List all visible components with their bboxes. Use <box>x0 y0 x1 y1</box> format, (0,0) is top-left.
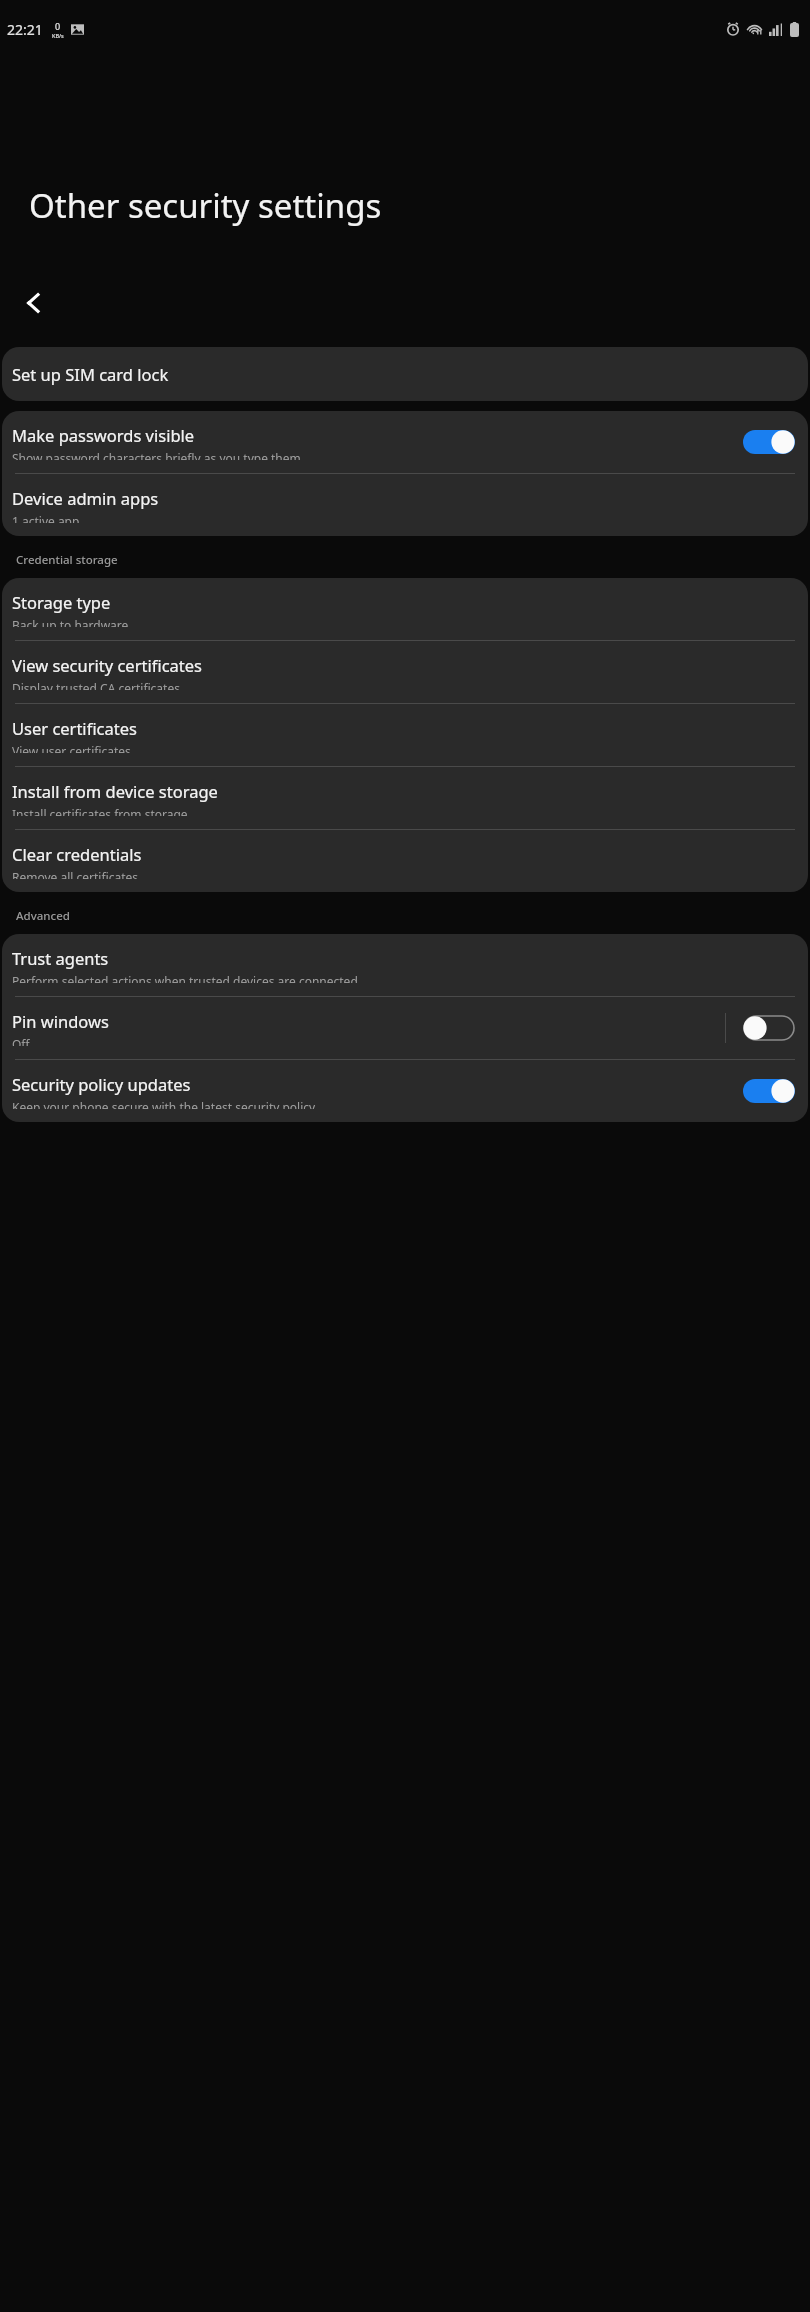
staticText: Advanced <box>16 908 70 924</box>
staticText: View security certificates <box>12 654 202 676</box>
button[interactable]: Pin windows <box>2 997 808 1059</box>
button[interactable]: Install from device storage <box>2 767 808 829</box>
staticText: Show password characters briefly as you … <box>12 450 304 460</box>
staticText: Make passwords visible <box>12 424 195 446</box>
staticText: Device admin apps <box>12 487 159 509</box>
button[interactable]: Set up SIM card lock <box>2 347 808 401</box>
staticText: 22:21 <box>7 20 43 39</box>
staticText: Back up to hardware <box>12 617 129 627</box>
button[interactable]: Security policy updates <box>2 1060 808 1122</box>
staticText: Remove all certificates. <box>12 869 142 879</box>
staticText: Security policy updates <box>12 1073 191 1095</box>
button[interactable]: User certificates <box>2 704 808 766</box>
button[interactable]: Device admin apps <box>2 474 808 536</box>
staticText: View user certificates. <box>12 743 135 753</box>
staticText: 1 active app <box>12 513 80 523</box>
staticText: KB/s <box>52 32 64 39</box>
button[interactable]: Navigate up <box>12 281 56 325</box>
staticText: Credential storage <box>16 552 118 568</box>
button[interactable]: Clear credentials <box>2 830 808 892</box>
button[interactable]: On <box>743 1076 795 1106</box>
button[interactable]: Make passwords visible <box>2 411 808 473</box>
button[interactable]: On <box>743 427 795 457</box>
staticText: Off <box>12 1036 30 1046</box>
staticText: Install from device storage <box>12 780 218 802</box>
staticText: 0 <box>55 20 61 32</box>
staticText: Storage type <box>12 591 111 613</box>
staticText: Set up SIM card lock <box>12 363 169 385</box>
staticText: Keep your phone secure with the latest s… <box>12 1099 318 1109</box>
staticText: Trust agents <box>12 947 109 969</box>
button[interactable]: Storage type <box>2 578 808 640</box>
staticText: Other security settings <box>29 183 382 228</box>
staticText: Pin windows <box>12 1010 109 1032</box>
staticText: Display trusted CA certificates. <box>12 680 184 690</box>
staticText: User certificates <box>12 717 137 739</box>
staticText: Perform selected actions when trusted de… <box>12 973 361 983</box>
button[interactable]: Off <box>743 1013 795 1043</box>
button[interactable]: View security certificates <box>2 641 808 703</box>
staticText: Install certificates from storage. <box>12 806 191 816</box>
staticText: Clear credentials <box>12 843 142 865</box>
button[interactable]: Trust agents <box>2 934 808 996</box>
